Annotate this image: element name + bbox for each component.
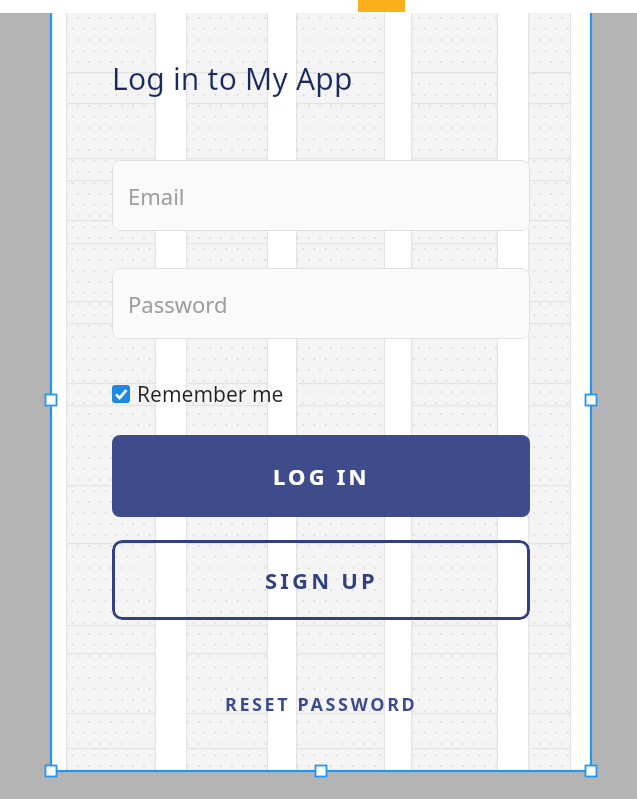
staticText: LOG IN: [273, 461, 370, 491]
staticText: Email: [128, 181, 185, 211]
button[interactable]: RESET PASSWORD: [112, 686, 530, 722]
staticText: Remember me: [137, 380, 284, 409]
staticText: RESET PASSWORD: [225, 692, 418, 717]
staticText: Password: [128, 289, 228, 319]
staticText: Log in to My App: [112, 58, 353, 99]
button[interactable]: Email: [112, 160, 530, 231]
button[interactable]: Remember me: [112, 376, 284, 412]
button[interactable]: SIGN UP: [112, 540, 530, 620]
button[interactable]: Password: [112, 268, 530, 339]
staticText: SIGN UP: [265, 565, 378, 595]
button[interactable]: LOG IN: [112, 435, 530, 517]
